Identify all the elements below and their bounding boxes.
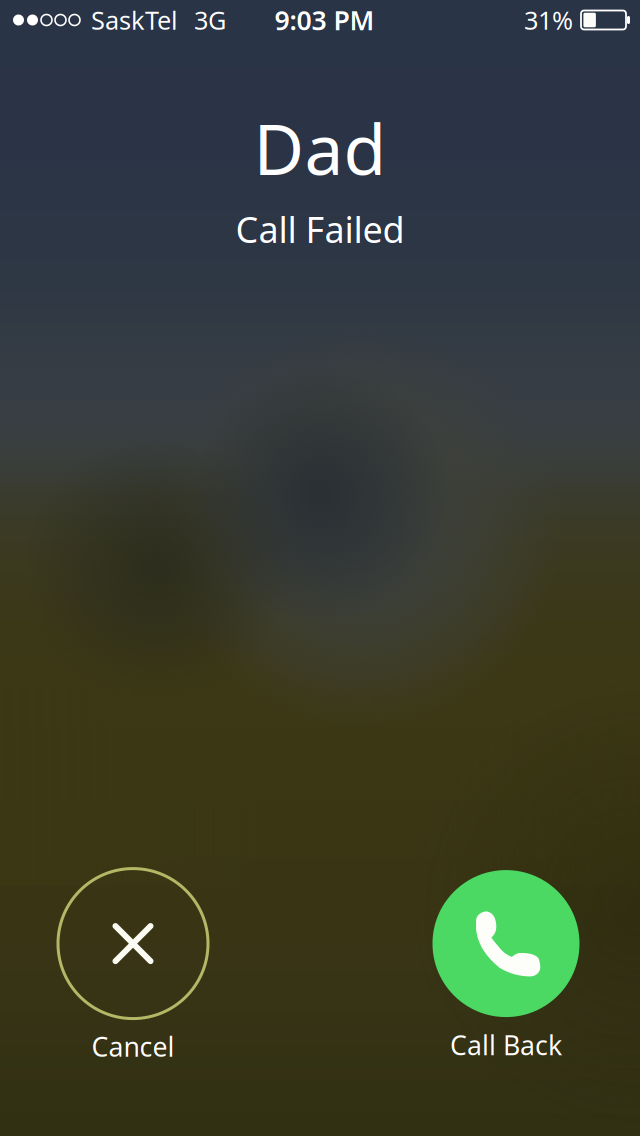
staticText: SaskTel <box>91 3 178 37</box>
staticText: 9:03 PM <box>274 2 374 38</box>
staticText: 31% <box>524 3 573 37</box>
staticText: Call Back <box>450 1027 562 1062</box>
staticText: Dad <box>253 102 386 194</box>
staticText: Cancel <box>91 1029 174 1064</box>
button[interactable]: Call Back <box>431 870 581 1062</box>
staticText: 3G <box>194 3 226 37</box>
staticText: Call Failed <box>235 205 404 253</box>
button[interactable]: Cancel <box>58 869 208 1064</box>
